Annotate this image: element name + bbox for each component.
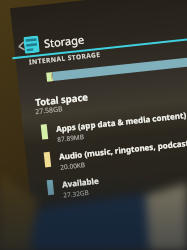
staticText: INTERNAL STORAGE [28,50,101,66]
staticText: 20.00KB [60,160,86,172]
staticText: Available [62,175,100,190]
button[interactable]: Available [47,160,187,201]
button[interactable]: Audio (music, ringtones, podcasts, [44,132,187,173]
staticText: Audio (music, ringtones, podcasts, [59,136,187,162]
staticText: 27.58GB [35,104,64,117]
staticText: 87.89MB [57,132,85,144]
staticText: 27.32GB [63,188,90,200]
staticText: Storage [43,31,86,51]
staticText: Total space [35,90,89,109]
staticText: Apps (app data & media content) [56,109,187,134]
button[interactable]: Apps (app data & media content) [41,105,187,145]
button[interactable]: Navigate up [13,39,29,54]
